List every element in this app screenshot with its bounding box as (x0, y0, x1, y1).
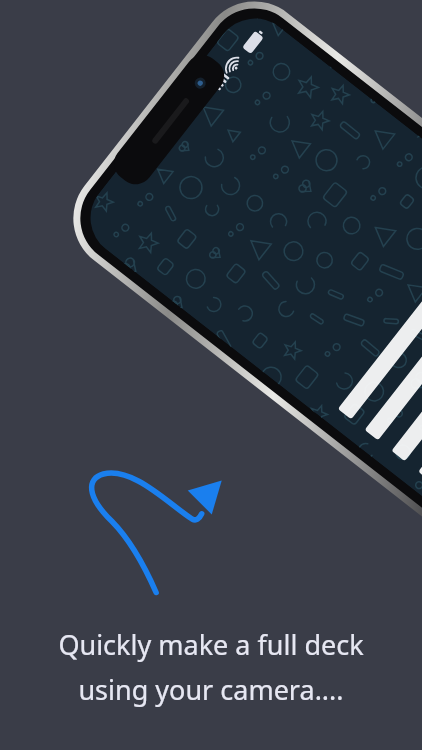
staticText: using your camera.... (78, 671, 344, 708)
button[interactable]: Quickly make a full deck (0, 626, 422, 708)
other: Flashcard preview (0, 0, 422, 750)
staticText: Quickly make a full deck (58, 626, 364, 663)
